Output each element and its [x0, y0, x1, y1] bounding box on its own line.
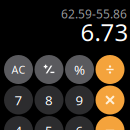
button[interactable]: 8	[34, 85, 63, 114]
button[interactable]: 6	[65, 116, 94, 130]
staticText: 5	[45, 122, 53, 130]
button[interactable]: Subtract	[95, 116, 124, 130]
button[interactable]: 9	[65, 85, 94, 114]
staticText: AC	[11, 62, 25, 77]
staticText: 7	[14, 91, 22, 109]
staticText: 9	[75, 91, 83, 109]
staticText: 6	[75, 122, 83, 130]
button[interactable]: 5	[34, 116, 63, 130]
staticText: 62.59-55.86	[61, 6, 127, 22]
staticText: 4	[14, 122, 22, 130]
button[interactable]: 4	[4, 116, 33, 130]
button[interactable]: AC	[4, 55, 33, 84]
staticText: 6.73	[80, 16, 128, 48]
button[interactable]: 7	[4, 85, 33, 114]
button[interactable]: Multiply	[95, 85, 124, 114]
staticText: 8	[45, 91, 53, 109]
button[interactable]: Divide	[95, 55, 124, 84]
button[interactable]: %	[65, 55, 94, 84]
button[interactable]: Toggle sign	[34, 55, 63, 84]
staticText: %	[74, 61, 85, 78]
